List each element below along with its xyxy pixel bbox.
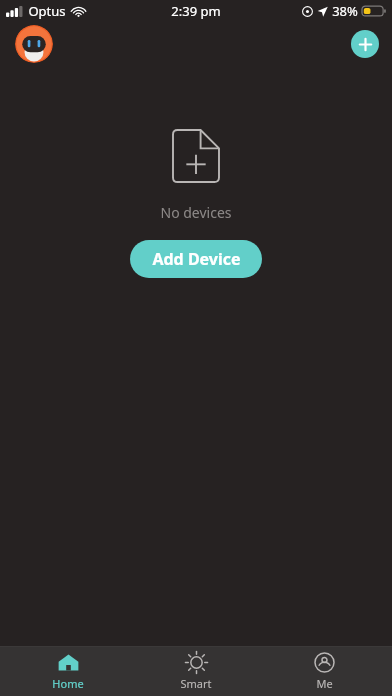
staticText: No devices [160,203,232,222]
staticText: 38% [332,2,358,20]
staticText: Optus [28,2,66,20]
button[interactable]: Profile [15,25,53,63]
button[interactable]: Smart [136,647,256,696]
staticText: Smart [180,676,212,691]
staticText: Home [52,676,84,691]
button[interactable]: Add [351,30,379,58]
staticText: 2:39 pm [171,2,221,20]
staticText: Me [316,676,333,691]
staticText: Add Device [152,248,241,270]
button[interactable]: Add Device [130,240,262,278]
button[interactable]: Home [8,647,128,696]
button[interactable]: Me [264,647,384,696]
